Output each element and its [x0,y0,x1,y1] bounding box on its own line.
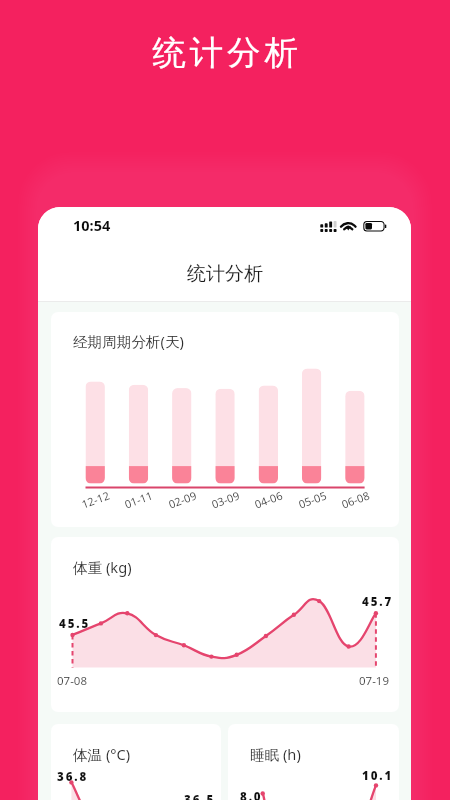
staticText: 36.8 [57,769,89,785]
staticText: 45.7 [362,594,394,610]
staticText: 经期周期分析(天) [73,331,184,351]
button[interactable]: 体温 (°C) [51,724,221,800]
staticText: 统计分析 [187,262,263,286]
staticText: 02-09 [166,487,199,511]
staticText: 体温 (°C) [73,744,131,764]
staticText: 体重 (kg) [73,557,132,577]
staticText: 05-05 [296,487,329,511]
staticText: 12-12 [79,487,112,511]
staticText: 10.1 [362,768,394,784]
button[interactable]: 统计分析 [38,246,411,302]
staticText: 36.5 [184,792,216,800]
button[interactable]: 睡眠 (h) [228,724,399,800]
staticText: 统计分析 [2,32,450,74]
staticText: 01-11 [122,487,155,511]
staticText: 07-08 [57,673,88,689]
button[interactable]: 经期周期分析(天) [51,312,399,527]
staticText: 07-19 [359,673,390,689]
button[interactable]: 体重 (kg) [51,537,399,712]
staticText: 03-09 [209,487,242,511]
staticText: 45.5 [59,616,91,632]
staticText: 10:54 [73,215,111,235]
staticText: 04-06 [252,487,285,511]
staticText: 06-08 [339,487,372,511]
staticText: 睡眠 (h) [250,744,301,764]
staticText: 8.0 [240,789,263,800]
